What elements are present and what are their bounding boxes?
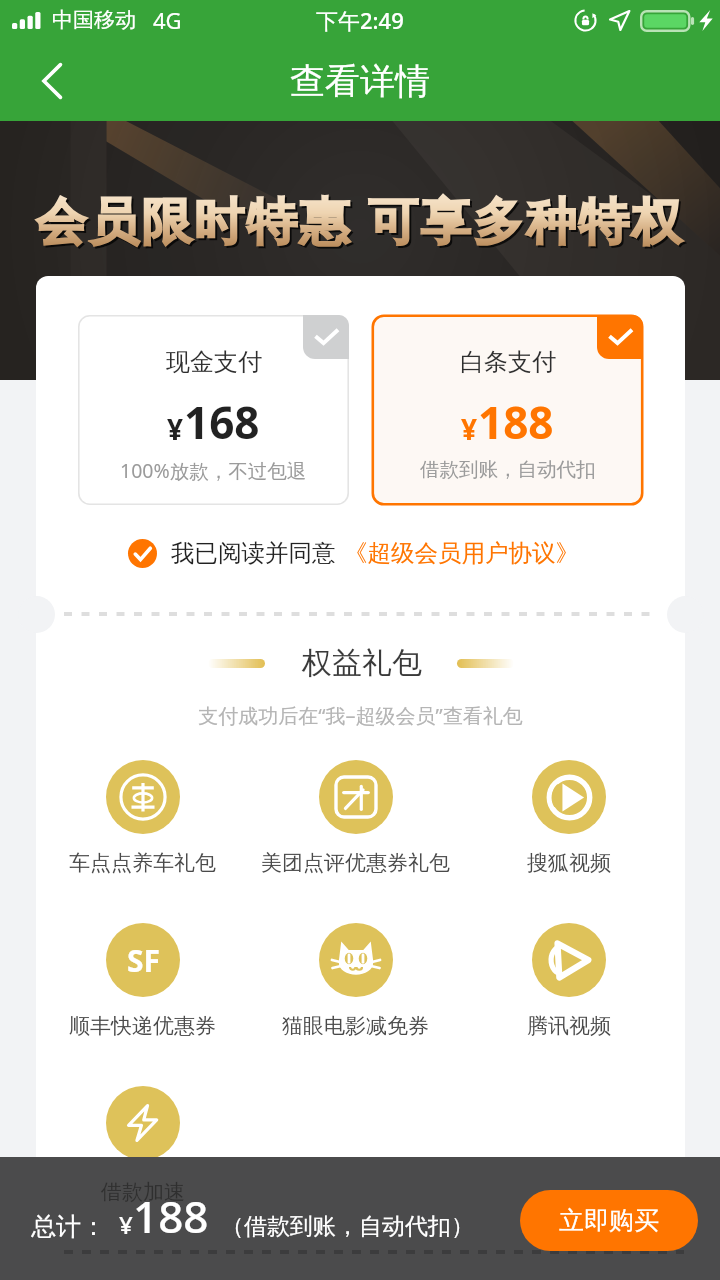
button[interactable]: SF: [36, 923, 249, 1039]
staticText: 现金支付: [166, 347, 262, 377]
staticText: 下午2:49: [316, 5, 404, 35]
button[interactable]: Back: [0, 42, 104, 120]
staticText: 会员限时特惠 可享多种特权: [38, 188, 687, 256]
staticText: ¥: [461, 410, 478, 448]
button[interactable]: 白条支付: [372, 315, 643, 505]
staticText: SF: [127, 940, 160, 981]
staticText: 查看详情: [290, 59, 430, 103]
staticText: 权益礼包: [302, 644, 422, 682]
staticText: 美团点评优惠券礼包: [261, 850, 450, 876]
button[interactable]: 猫眼电影减免券: [249, 923, 462, 1039]
staticText: 腾讯视频: [527, 1013, 611, 1039]
staticText: 支付成功后在“我–超级会员”查看礼包: [36, 702, 685, 729]
staticText: 168: [184, 392, 260, 452]
staticText: 100%放款，不过包退: [120, 457, 307, 484]
staticText: 车点点养车礼包: [69, 850, 216, 876]
staticText: 顺丰快递优惠券: [69, 1013, 216, 1039]
staticText: 《超级会员用户协议》: [344, 538, 579, 568]
button[interactable]: 美团点评优惠券礼包: [249, 760, 462, 876]
button[interactable]: [36, 1086, 249, 1205]
button[interactable]: 腾讯视频: [462, 923, 675, 1039]
staticText: 白条支付: [460, 347, 556, 377]
staticText: 总计：: [31, 1211, 106, 1242]
staticText: 借款到账，自动代扣: [420, 457, 596, 482]
staticText: 会员限时特惠 可享多种特权: [36, 186, 685, 254]
staticText: （借款到账，自动代扣）: [221, 1212, 474, 1241]
button[interactable]: 车点点养车礼包: [36, 760, 249, 876]
button[interactable]: 立即购买: [520, 1190, 698, 1251]
button[interactable]: 我已阅读并同意: [36, 532, 685, 574]
button[interactable]: 现金支付: [78, 315, 349, 505]
staticText: 猫眼电影减免券: [282, 1013, 429, 1039]
staticText: 4G: [153, 5, 182, 35]
staticText: 立即购买: [559, 1205, 659, 1236]
staticText: 188: [133, 1186, 209, 1246]
staticText: 188: [478, 392, 554, 452]
button[interactable]: 搜狐视频: [462, 760, 675, 876]
staticText: 中国移动: [52, 7, 136, 33]
staticText: 借款加速: [101, 1179, 185, 1205]
staticText: ¥: [119, 1208, 133, 1241]
staticText: 我已阅读并同意: [171, 538, 336, 568]
staticText: 搜狐视频: [527, 850, 611, 876]
staticText: ¥: [167, 410, 184, 448]
